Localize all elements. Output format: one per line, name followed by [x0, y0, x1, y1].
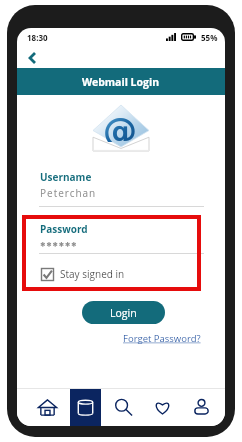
staticText: 18:30 [27, 32, 48, 43]
button[interactable]: Login [82, 301, 165, 324]
button[interactable]: Back [21, 47, 43, 69]
staticText: Forget Password? [123, 332, 201, 345]
staticText: Password [40, 222, 88, 236]
button[interactable]: Database [66, 389, 104, 426]
staticText: Stay signed in [60, 267, 125, 281]
staticText: Peterchan [40, 186, 97, 200]
staticText: Webmail Login [82, 75, 160, 89]
button[interactable]: Stay signed in [41, 267, 125, 281]
button[interactable]: Home [28, 389, 66, 426]
button[interactable]: Forget Password? [123, 332, 201, 345]
staticText: 55% [201, 32, 218, 43]
button[interactable]: Search [104, 389, 143, 426]
staticText: Login [110, 306, 137, 320]
button[interactable]: Favorites [143, 389, 182, 426]
button[interactable]: Profile [182, 389, 221, 426]
staticText: Username [40, 170, 92, 184]
staticText: @ [103, 110, 137, 142]
